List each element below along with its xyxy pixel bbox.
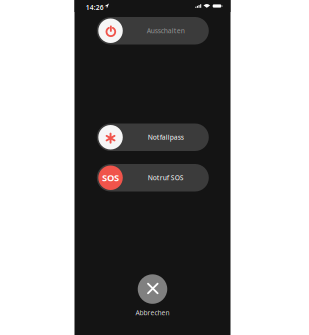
button[interactable]: Notruf SOS — [97, 164, 209, 191]
button[interactable]: Abbrechen — [74, 273, 230, 319]
button[interactable]: Ausschalten — [97, 17, 209, 44]
staticText: Ausschalten — [147, 26, 185, 35]
staticText: Notruf SOS — [148, 173, 184, 182]
button[interactable]: Notfallpass — [97, 123, 209, 151]
staticText: SOS — [102, 172, 119, 184]
staticText: 14:26 — [86, 3, 104, 12]
staticText: Abbrechen — [135, 308, 169, 317]
staticText: Notfallpass — [148, 133, 184, 142]
